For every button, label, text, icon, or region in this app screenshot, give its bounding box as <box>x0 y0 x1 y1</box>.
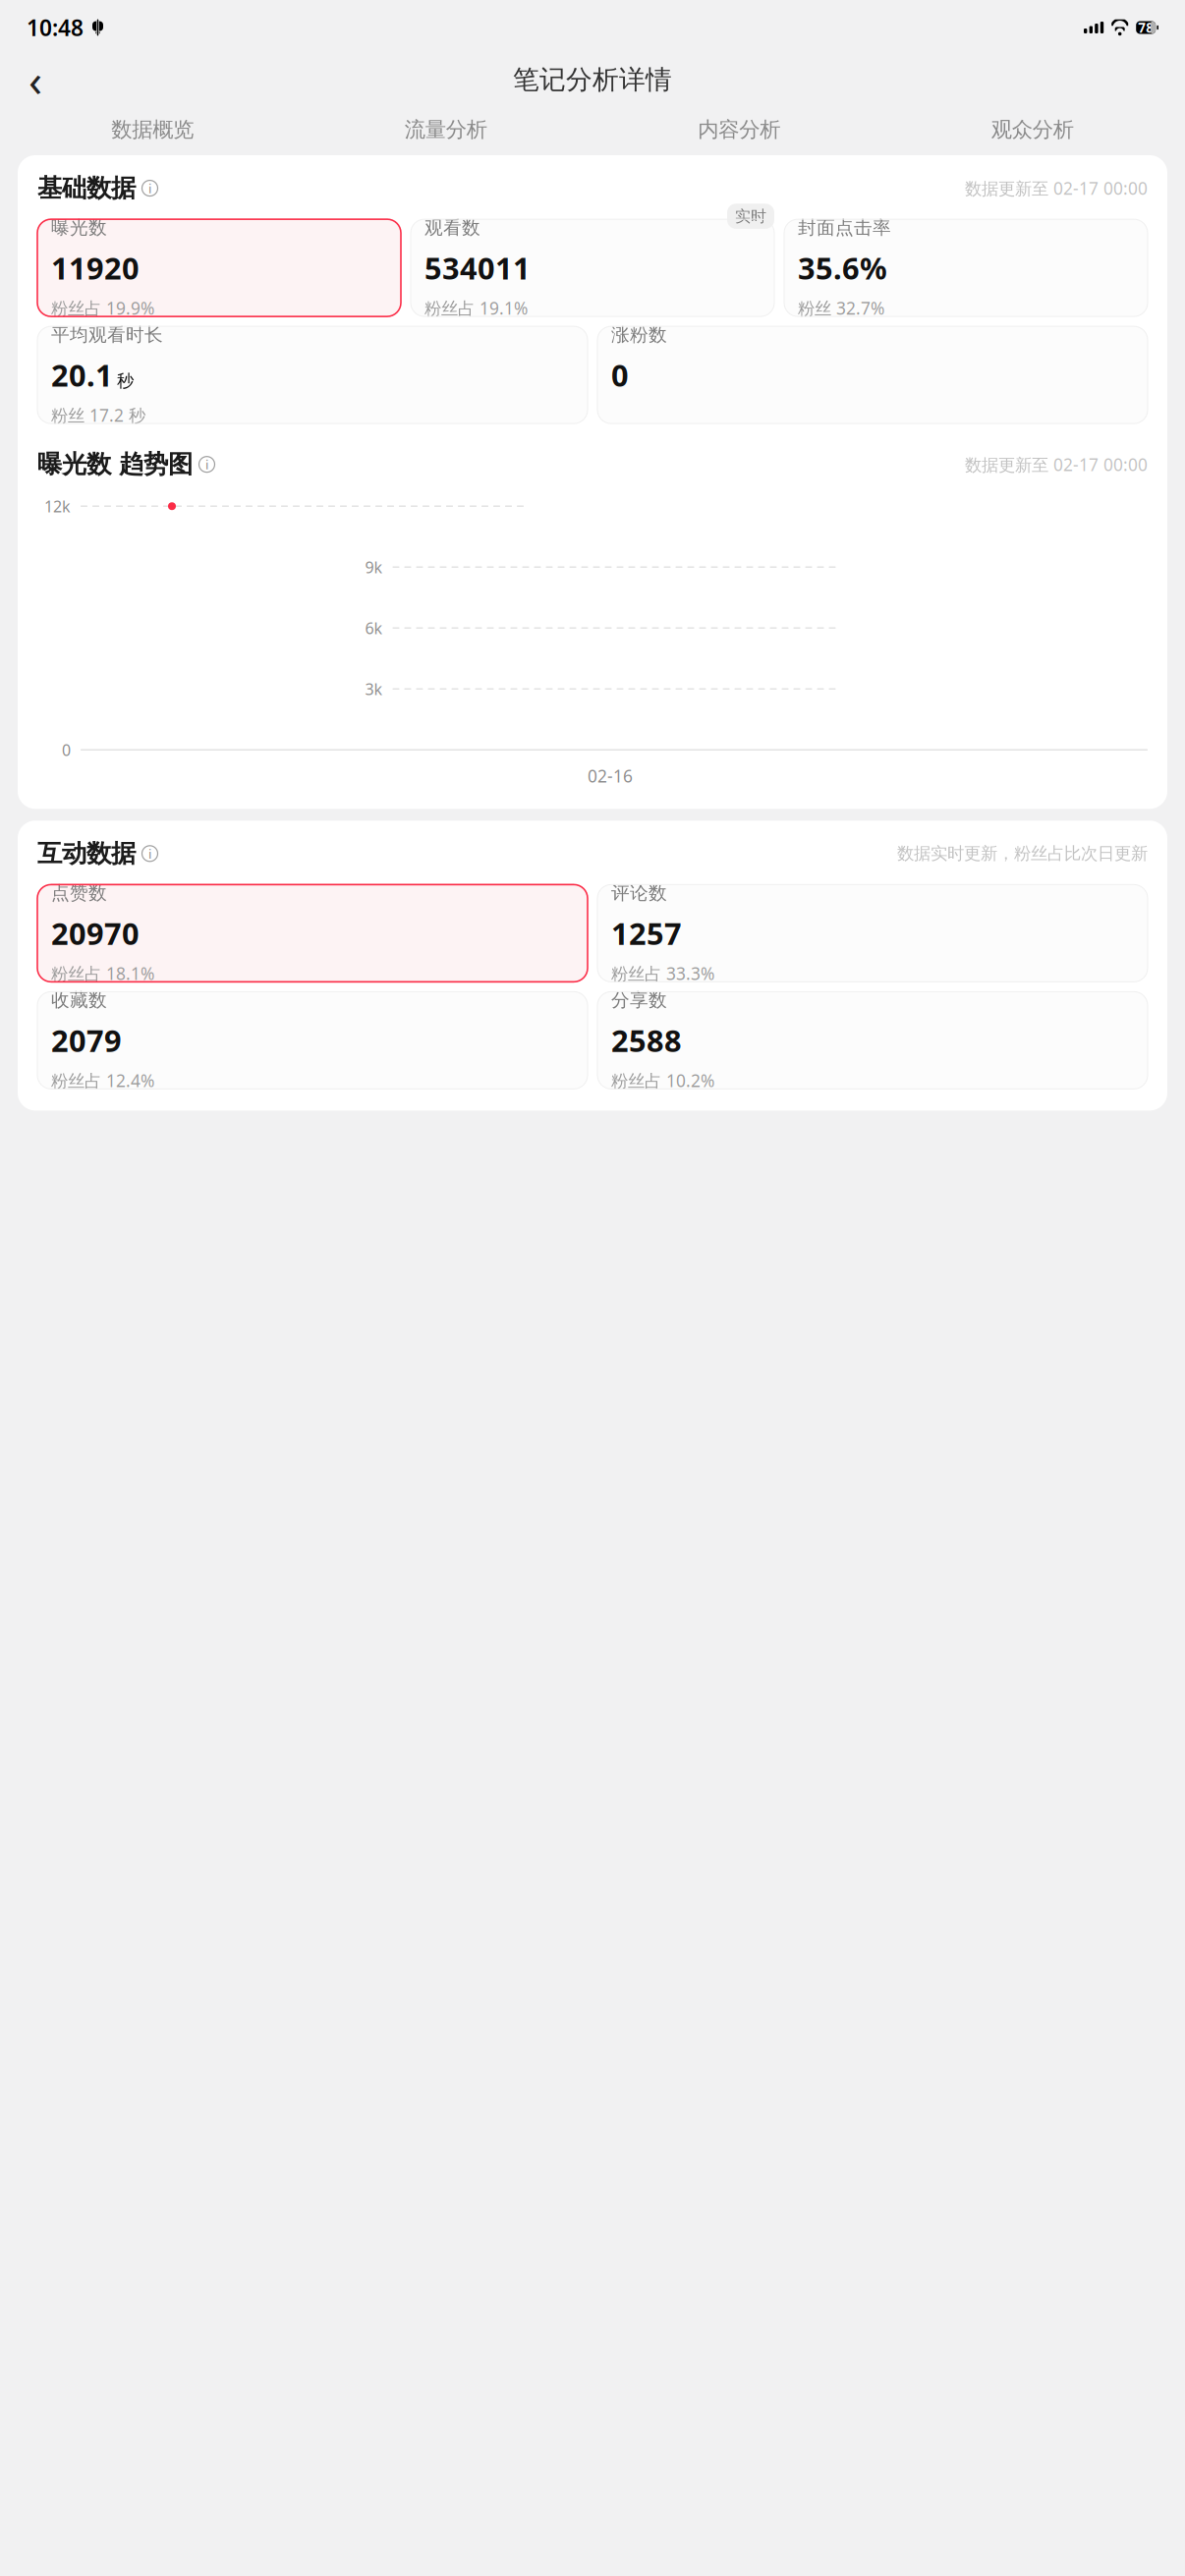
staticText: 实时 <box>735 207 766 226</box>
staticText: 数据实时更新，粉丝占比次日更新 <box>897 843 1148 864</box>
staticText: 粉丝占 12.4% <box>51 1069 154 1092</box>
staticText: 粉丝占 19.1% <box>424 297 528 319</box>
button[interactable]: 说明 <box>198 456 215 473</box>
staticText: 涨粉数 <box>611 324 667 346</box>
staticText: 35.6% <box>798 248 887 288</box>
staticText: 粉丝占 19.9% <box>51 297 154 319</box>
staticText: 数据更新至 02-17 00:00 <box>965 453 1148 476</box>
staticText: 20.1 <box>51 355 113 395</box>
staticText: 基础数据 <box>37 173 136 203</box>
staticText: 粉丝占 10.2% <box>611 1069 714 1092</box>
staticText: i <box>148 845 151 862</box>
staticText: 曝光数 趋势图 <box>37 449 193 480</box>
staticText: 内容分析 <box>698 117 780 143</box>
staticText: 数据概览 <box>111 117 194 143</box>
staticText: 02-16 <box>588 765 633 787</box>
staticText: 2079 <box>51 1020 122 1060</box>
staticText: 观看数 <box>424 216 480 239</box>
staticText: 78 <box>1138 19 1154 36</box>
button[interactable]: 涨粉数 <box>597 326 1148 424</box>
button[interactable]: 流量分析 <box>299 105 592 154</box>
staticText: 0 <box>611 355 629 395</box>
staticText: 9k <box>365 557 383 577</box>
staticText: 10:48 <box>27 13 84 42</box>
button[interactable]: 说明 <box>141 845 158 862</box>
staticText: ‹ <box>28 50 42 109</box>
button[interactable]: 内容分析 <box>592 105 886 154</box>
staticText: 封面点击率 <box>798 216 891 239</box>
staticText: 笔记分析详情 <box>513 63 672 96</box>
staticText: 2588 <box>611 1020 682 1060</box>
staticText: 3k <box>365 678 383 699</box>
staticText: 平均观看时长 <box>51 324 163 346</box>
staticText: 收藏数 <box>51 989 107 1011</box>
staticText: i <box>148 179 151 197</box>
button[interactable]: 点赞数 <box>37 885 588 982</box>
staticText: 粉丝占 18.1% <box>51 962 154 985</box>
staticText: 11920 <box>51 248 140 288</box>
staticText: 1257 <box>611 913 682 953</box>
staticText: 粉丝 17.2 秒 <box>51 404 145 426</box>
button[interactable]: 返回 <box>14 58 57 101</box>
button[interactable]: 收藏数 <box>37 992 588 1089</box>
button[interactable]: 说明 <box>141 180 158 197</box>
staticText: 秒 <box>117 370 134 391</box>
staticText: 6k <box>365 618 383 638</box>
staticText: 12k <box>44 496 71 517</box>
staticText: 20970 <box>51 913 140 953</box>
button[interactable]: 数据概览 <box>6 105 299 154</box>
staticText: 流量分析 <box>405 117 487 143</box>
staticText: 互动数据 <box>37 838 136 869</box>
staticText: 分享数 <box>611 989 667 1011</box>
staticText: 数据更新至 02-17 00:00 <box>965 177 1148 199</box>
staticText: i <box>205 456 208 473</box>
button[interactable]: 观众分析 <box>886 105 1179 154</box>
staticText: 曝光数 <box>51 216 107 239</box>
button[interactable]: 曝光数 <box>37 219 401 316</box>
button[interactable]: 分享数 <box>597 992 1148 1089</box>
button[interactable]: 平均观看时长 <box>37 326 588 424</box>
staticText: 观众分析 <box>991 117 1074 143</box>
staticText: 评论数 <box>611 882 667 904</box>
staticText: 点赞数 <box>51 882 107 904</box>
staticText: 粉丝 32.7% <box>798 297 884 319</box>
staticText: 粉丝占 33.3% <box>611 962 714 985</box>
button[interactable]: 封面点击率 <box>784 219 1148 316</box>
button[interactable]: 观看数 <box>411 219 774 316</box>
staticText: 534011 <box>424 248 531 288</box>
button[interactable]: 评论数 <box>597 885 1148 982</box>
staticText: 0 <box>62 739 71 760</box>
